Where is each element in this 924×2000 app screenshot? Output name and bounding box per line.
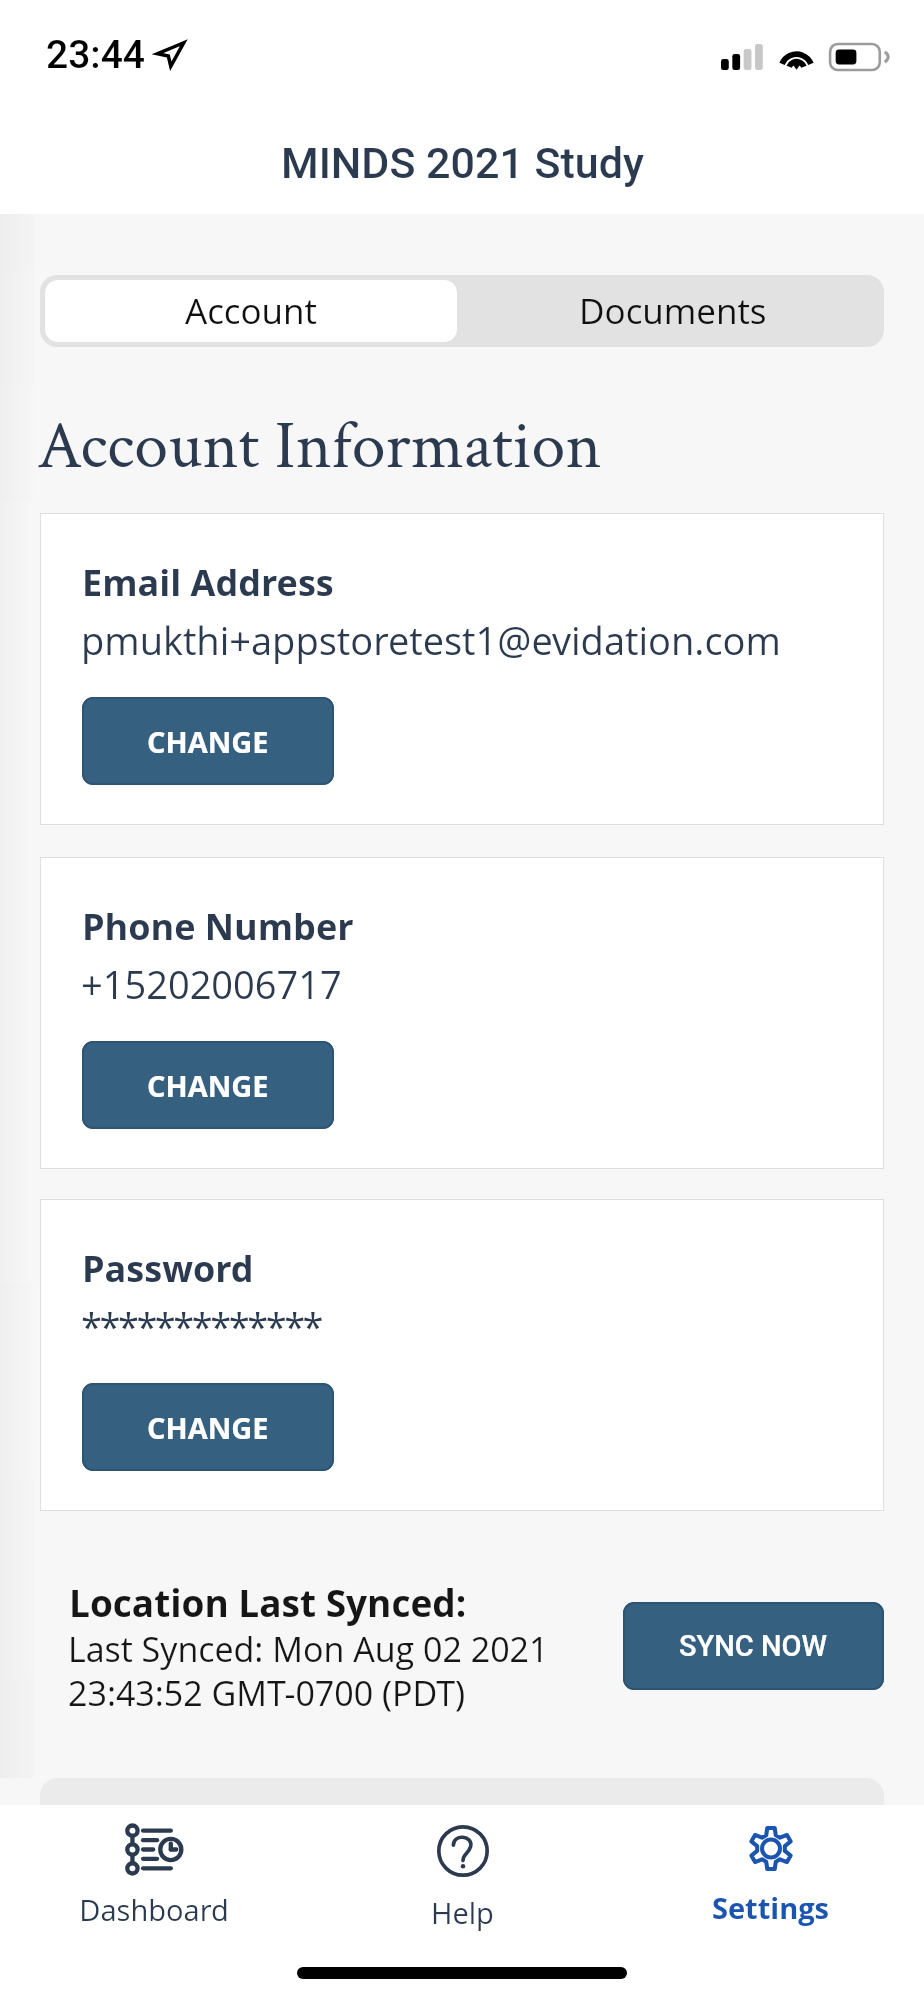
staticText: Settings xyxy=(712,1888,829,1927)
button[interactable]: CHANGE xyxy=(82,1041,334,1129)
staticText: Last Synced: Mon Aug 02 2021 23:43:52 GM… xyxy=(68,1626,549,1716)
staticText: Account Information xyxy=(37,402,602,490)
staticText: ************* xyxy=(81,1300,322,1352)
staticText: CHANGE xyxy=(147,1066,269,1105)
staticText: 23:44 xyxy=(46,32,146,78)
button[interactable]: SYNC NOW xyxy=(623,1602,884,1690)
button[interactable]: Documents xyxy=(462,275,884,347)
staticText: Documents xyxy=(579,287,767,335)
button[interactable]: CHANGE xyxy=(82,1383,334,1471)
staticText: Account xyxy=(185,287,317,335)
staticText: SYNC NOW xyxy=(679,1629,828,1663)
staticText: MINDS 2021 Study xyxy=(281,138,644,188)
button[interactable]: Settings xyxy=(616,1805,924,1950)
staticText: Email Address xyxy=(82,558,334,607)
staticText: pmukthi+appstoretest1@evidation.com xyxy=(81,614,781,666)
staticText: Help xyxy=(431,1893,494,1932)
staticText: Phone Number xyxy=(82,902,354,951)
staticText: Password xyxy=(82,1244,254,1293)
other: Help xyxy=(437,1825,489,1877)
staticText: +15202006717 xyxy=(81,958,342,1010)
staticText: Location Last Synced: xyxy=(69,1577,467,1627)
other: Dashboard xyxy=(126,1825,182,1874)
button[interactable]: Help xyxy=(308,1805,616,1950)
other: Settings xyxy=(748,1825,794,1872)
staticText: Dashboard xyxy=(79,1890,229,1929)
staticText: CHANGE xyxy=(147,722,269,761)
button[interactable]: Account xyxy=(40,275,462,347)
button[interactable]: Dashboard xyxy=(0,1805,308,1950)
button[interactable]: CHANGE xyxy=(82,697,334,785)
staticText: CHANGE xyxy=(147,1408,269,1447)
